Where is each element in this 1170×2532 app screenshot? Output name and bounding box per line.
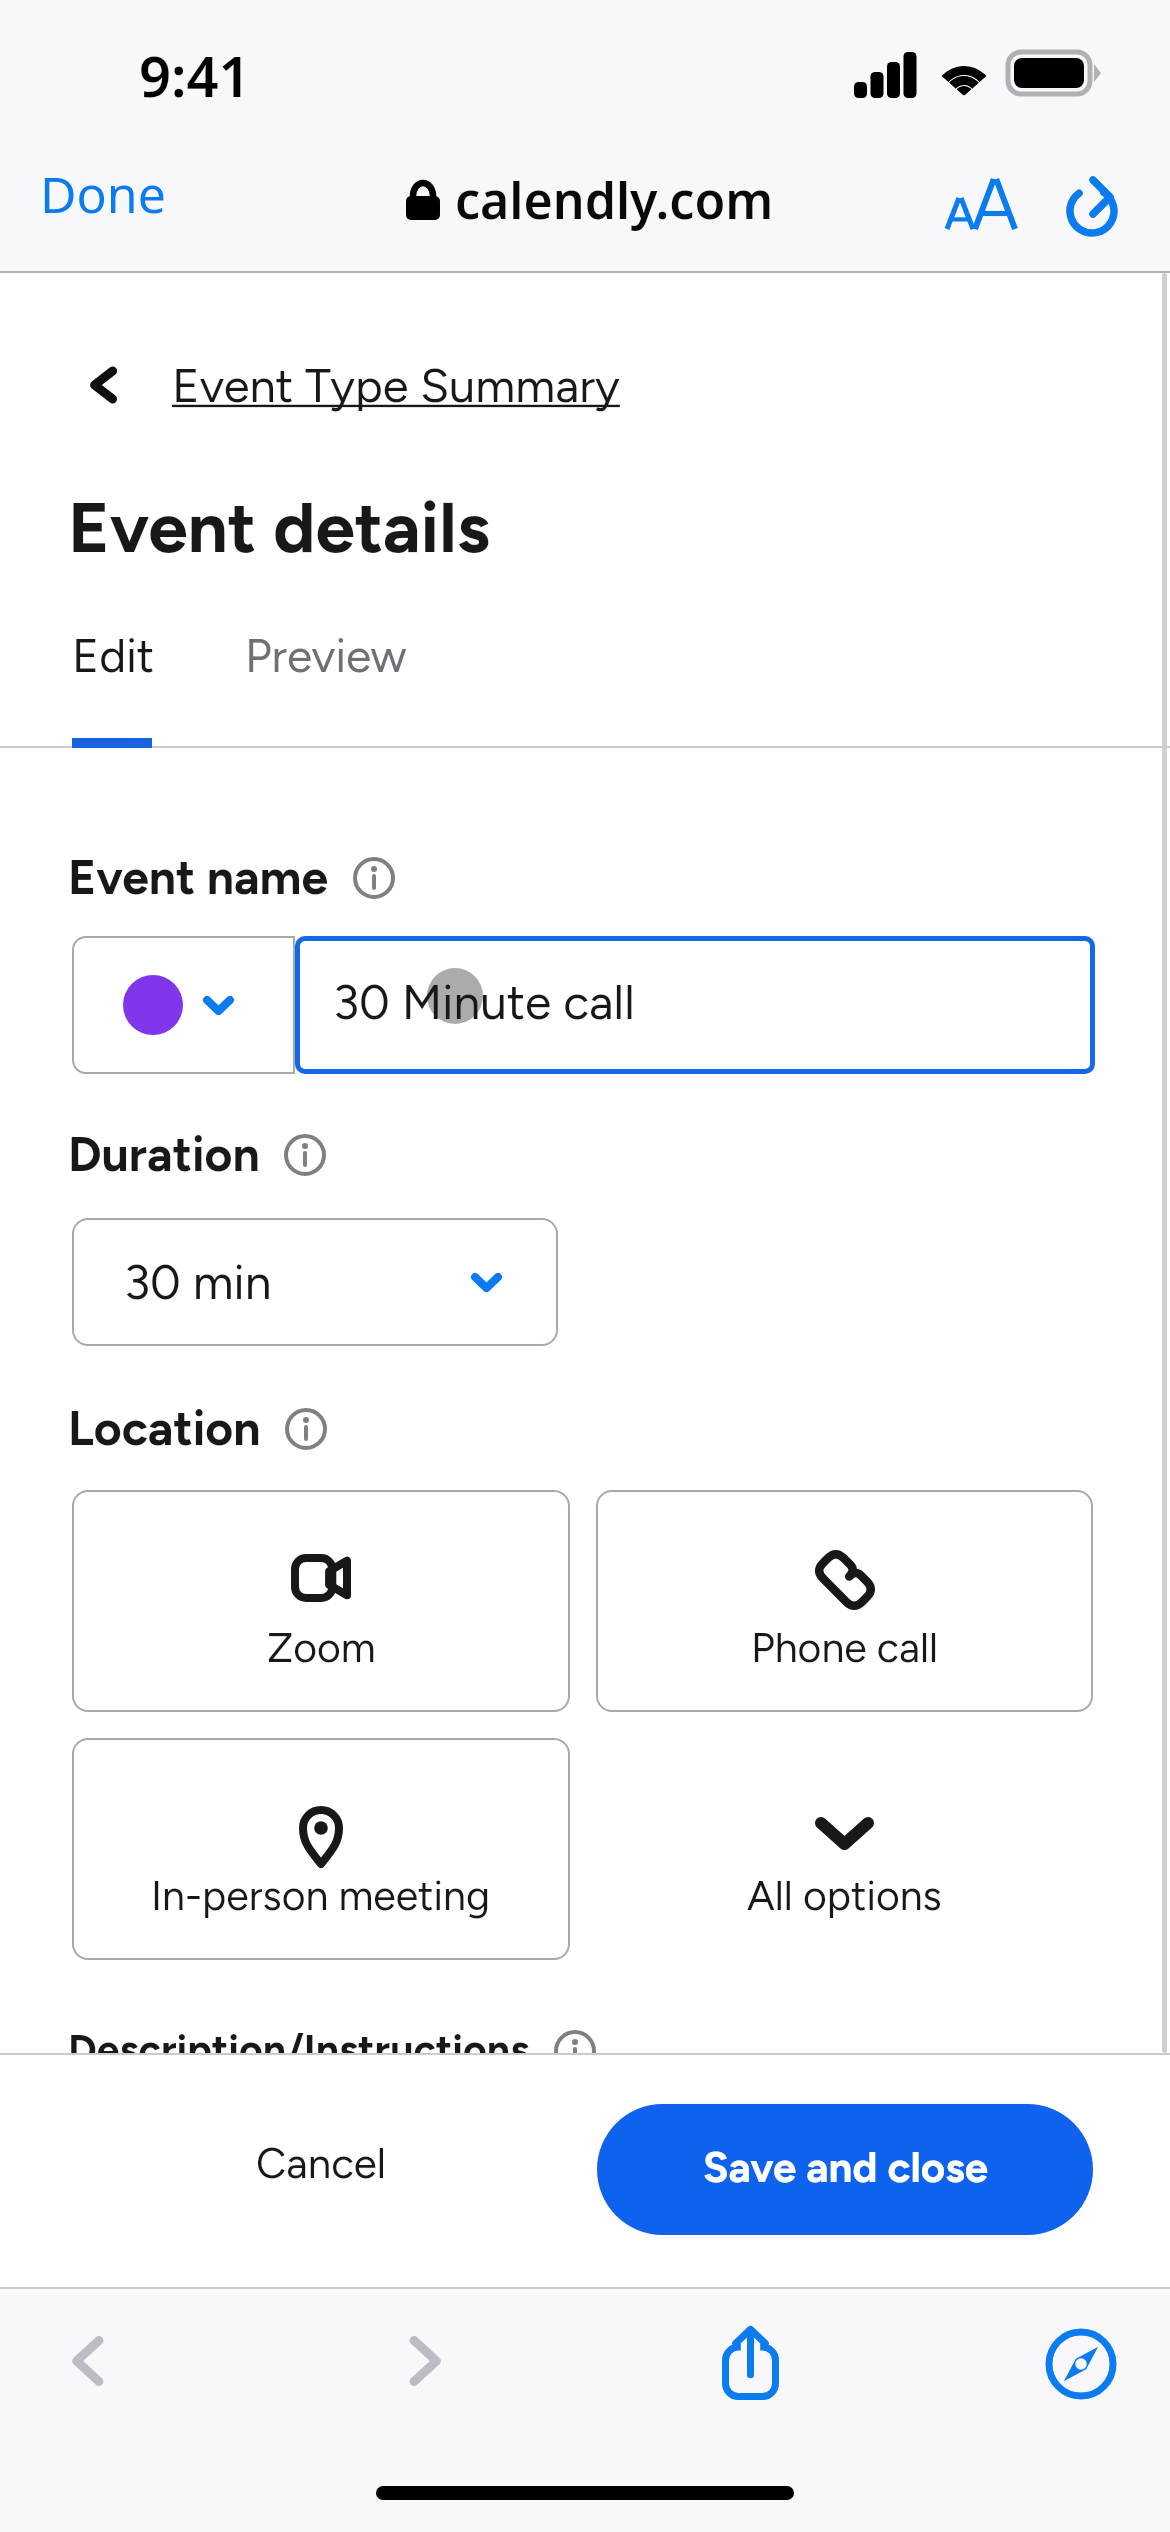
staticText: Zoom [267, 1623, 376, 1672]
button[interactable]: Phone call [596, 1490, 1093, 1712]
staticText: Description/Instructions [68, 2025, 530, 2074]
staticText: Cancel [256, 2138, 387, 2188]
button[interactable]: Reload [1051, 164, 1135, 248]
button[interactable]: Edit [68, 624, 159, 687]
button[interactable]: Event Type Summary [76, 357, 620, 413]
button[interactable]: Done [18, 140, 188, 248]
staticText: Location [68, 1399, 261, 1457]
staticText: Event details [68, 485, 490, 570]
staticText: Save and close [703, 2142, 988, 2192]
staticText: Event Type Summary [172, 357, 620, 413]
button[interactable]: Share [695, 2308, 805, 2418]
button[interactable]: Cancel [230, 2116, 413, 2210]
button[interactable]: Text size [926, 160, 1020, 252]
button[interactable]: Preview [241, 624, 411, 687]
button[interactable]: Save and close [597, 2104, 1093, 2235]
staticText: Event name [68, 848, 329, 906]
staticText: calendly.com [455, 166, 774, 234]
staticText: Edit [72, 628, 155, 683]
button[interactable]: Zoom [72, 1490, 570, 1712]
staticText: Duration [68, 1125, 260, 1183]
button[interactable]: Tabs [1026, 2309, 1136, 2419]
button[interactable]: 30 min [72, 1218, 558, 1346]
staticText: 9:41 [139, 37, 251, 113]
button[interactable]: In-person meeting [72, 1738, 570, 1960]
staticText: All options [747, 1871, 942, 1920]
staticText: Phone call [751, 1623, 938, 1672]
button[interactable]: Forward [369, 2306, 479, 2416]
staticText: Preview [245, 628, 407, 683]
button[interactable]: Back [34, 2306, 144, 2416]
staticText: 30 Minute call [333, 973, 635, 1031]
button[interactable]: All options [596, 1738, 1093, 1960]
staticText: 30 min [124, 1253, 272, 1311]
staticText: In-person meeting [151, 1871, 491, 1920]
button[interactable]: 30 Minute call [295, 936, 1095, 1074]
staticText: Done [40, 160, 166, 228]
button[interactable]: Pick event colour [72, 936, 295, 1074]
